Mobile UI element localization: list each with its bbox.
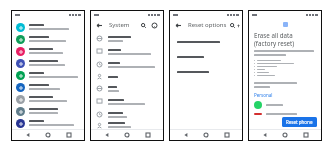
button[interactable]: Recent apps <box>64 130 74 140</box>
button[interactable]: Recent apps <box>222 130 232 140</box>
button[interactable] <box>12 21 84 33</box>
staticText: Reset options <box>188 21 227 29</box>
button[interactable] <box>12 33 84 45</box>
button[interactable] <box>12 45 84 57</box>
staticText: Reset phone <box>286 119 313 125</box>
button[interactable] <box>12 93 84 105</box>
button[interactable] <box>12 69 84 81</box>
button[interactable]: Back <box>94 20 105 31</box>
button[interactable]: Back <box>260 130 270 140</box>
button[interactable]: Home <box>122 130 132 140</box>
button[interactable]: Search <box>138 20 149 31</box>
button[interactable] <box>254 113 316 115</box>
button[interactable] <box>91 108 163 121</box>
button[interactable]: Home <box>201 130 211 140</box>
button[interactable] <box>91 58 163 71</box>
button[interactable] <box>12 81 84 93</box>
button[interactable] <box>254 101 316 109</box>
button[interactable]: Back <box>173 20 184 31</box>
button[interactable]: Back <box>181 130 191 140</box>
button[interactable]: Home <box>43 130 53 140</box>
button[interactable]: Reset phone <box>282 117 317 127</box>
button[interactable]: Recent apps <box>143 130 153 140</box>
button[interactable] <box>170 64 242 79</box>
button[interactable]: Search <box>227 20 238 31</box>
staticText: Personal <box>254 92 273 98</box>
button[interactable]: Back <box>23 130 33 140</box>
button[interactable]: Recent apps <box>301 130 311 140</box>
button[interactable]: Help and feedback <box>238 20 239 31</box>
button[interactable] <box>91 95 163 108</box>
staticText: Erase all data (factory reset) <box>254 31 316 47</box>
button[interactable] <box>91 71 163 82</box>
button[interactable] <box>12 105 84 117</box>
button[interactable] <box>170 49 242 64</box>
button[interactable] <box>91 121 163 129</box>
button[interactable]: Help and feedback <box>149 20 160 31</box>
button[interactable] <box>12 57 84 69</box>
button[interactable] <box>170 34 242 49</box>
button[interactable] <box>12 117 84 129</box>
staticText: System <box>109 21 130 29</box>
button[interactable]: Home <box>280 130 290 140</box>
button[interactable] <box>91 45 163 58</box>
button[interactable] <box>91 32 163 45</box>
button[interactable] <box>91 82 163 95</box>
button[interactable]: Back <box>102 130 112 140</box>
